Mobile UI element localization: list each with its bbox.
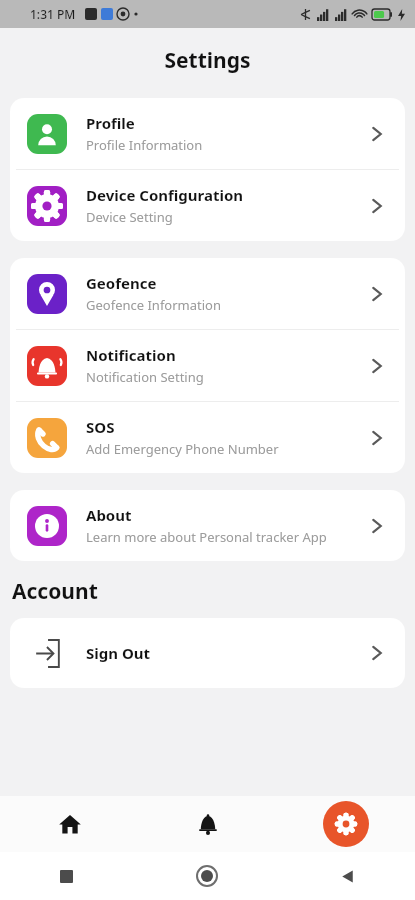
staticText: Notification Setting	[86, 368, 204, 386]
button[interactable]: Device Configuration	[10, 170, 405, 241]
staticText: Add Emergency Phone Number	[86, 440, 279, 458]
staticText: Device Setting	[86, 208, 173, 226]
button[interactable]: Profile	[10, 98, 405, 169]
staticText: Profile	[86, 113, 135, 133]
staticText: Notification	[86, 345, 176, 365]
staticText: Geofence Information	[86, 296, 221, 314]
staticText: Learn more about Personal tracker App	[86, 528, 327, 546]
button[interactable]: SOS	[10, 402, 405, 473]
staticText: Device Configuration	[86, 185, 244, 205]
button[interactable]: Geofence	[10, 258, 405, 329]
staticText: About	[86, 505, 132, 525]
button[interactable]: Notification	[10, 330, 405, 401]
staticText: Sign Out	[86, 643, 151, 663]
button[interactable]: Home	[0, 796, 139, 852]
staticText: 1:31 PM	[30, 6, 76, 22]
button[interactable]: Notifications	[139, 796, 277, 852]
staticText: SOS	[86, 417, 115, 437]
staticText: Account	[12, 577, 98, 606]
button[interactable]: About	[10, 490, 405, 561]
staticText: Profile Information	[86, 136, 203, 154]
button[interactable]: Sign Out	[10, 618, 405, 688]
staticText: Geofence	[86, 273, 157, 293]
staticText: Settings	[164, 46, 251, 75]
button[interactable]: Settings	[323, 801, 369, 847]
